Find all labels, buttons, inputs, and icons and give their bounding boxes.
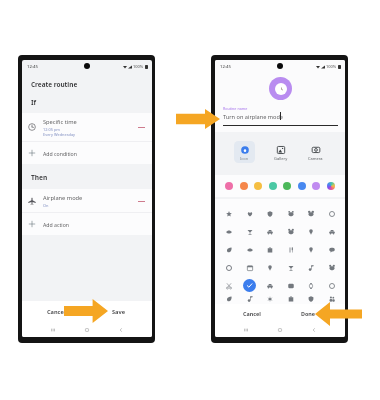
button[interactable]	[270, 141, 291, 163]
staticText: 100%	[133, 64, 144, 69]
staticText: Turn on airplane mode	[223, 113, 283, 121]
button[interactable]: Icon 21	[263, 261, 276, 274]
button[interactable]: Colour	[298, 182, 306, 190]
button[interactable]: Icon 29	[304, 279, 317, 292]
staticText: Every Wednesday	[43, 132, 76, 137]
button[interactable]: Icon 11	[304, 225, 317, 238]
button[interactable]: Icon 3	[263, 207, 276, 220]
button[interactable]	[234, 141, 255, 163]
staticText: 100%	[326, 64, 337, 69]
button[interactable]: Add condition	[22, 142, 152, 164]
button[interactable]: Icon 36	[325, 294, 338, 304]
button[interactable]: Icon 24	[325, 261, 338, 274]
button[interactable]: Icon 10	[284, 225, 297, 238]
staticText: 12:45	[220, 63, 231, 69]
button[interactable]: Icon 23	[304, 261, 317, 274]
staticText: 12:45	[27, 63, 38, 69]
button[interactable]: Colour	[254, 182, 262, 190]
button[interactable]: Remove condition	[137, 123, 146, 132]
staticText: If	[31, 98, 37, 107]
staticText: Save	[112, 308, 125, 316]
staticText: Airplane mode	[43, 194, 83, 202]
button[interactable]: Selected icon	[243, 279, 256, 292]
button[interactable]: Colour	[269, 182, 277, 190]
staticText: 12:05 pm	[43, 127, 60, 132]
button[interactable]: Icon 20	[243, 261, 256, 274]
staticText: Gallery	[274, 156, 288, 161]
button[interactable]	[305, 141, 326, 163]
button[interactable]: Icon 34	[284, 294, 297, 304]
button[interactable]: Icon 15	[263, 243, 276, 256]
button[interactable]: Icon 28	[284, 279, 297, 292]
button[interactable]: Recents	[243, 327, 249, 333]
button[interactable]: Back	[311, 327, 317, 333]
button[interactable]: Colour	[225, 182, 233, 190]
button[interactable]: Colour	[240, 182, 248, 190]
button[interactable]: Home	[277, 327, 283, 333]
button[interactable]: Icon 18	[325, 243, 338, 256]
staticText: Then	[31, 173, 48, 182]
button[interactable]: Icon 22	[284, 261, 297, 274]
button[interactable]: Icon 35	[304, 294, 317, 304]
button[interactable]: Icon 31	[222, 294, 235, 304]
button[interactable]: More colours	[327, 182, 335, 190]
button[interactable]: Icon 17	[304, 243, 317, 256]
button[interactable]: Icon 19	[222, 261, 235, 274]
button[interactable]: Remove action	[137, 197, 146, 206]
staticText: Done	[301, 310, 316, 317]
button[interactable]: Icon 5	[304, 207, 317, 220]
button[interactable]: Airplane mode	[22, 189, 152, 213]
button[interactable]: Back	[118, 327, 124, 333]
button[interactable]: Icon 9	[263, 225, 276, 238]
button[interactable]: Cancel	[40, 301, 72, 322]
button[interactable]: Save	[102, 301, 134, 322]
button[interactable]: Icon 4	[284, 207, 297, 220]
button[interactable]: Icon 13	[222, 243, 235, 256]
staticText: Icon	[240, 156, 249, 161]
button[interactable]: Icon 8	[243, 225, 256, 238]
button[interactable]: Icon 27	[263, 279, 276, 292]
staticText: Add condition	[43, 150, 77, 157]
staticText: Camera	[308, 156, 323, 161]
button[interactable]: Icon 30	[325, 279, 338, 292]
button[interactable]: Colour	[283, 182, 291, 190]
button[interactable]: Icon 7	[222, 225, 235, 238]
button[interactable]: Icon 6	[325, 207, 338, 220]
button[interactable]: Icon 32	[243, 294, 256, 304]
button[interactable]: Icon 33	[263, 294, 276, 304]
button[interactable]: Routine icon	[269, 77, 292, 100]
staticText: Cancel	[243, 310, 261, 317]
staticText: Add action	[43, 221, 69, 228]
button[interactable]: Recents	[50, 327, 56, 333]
button[interactable]: Icon 14	[243, 243, 256, 256]
staticText: Routine name	[223, 106, 248, 111]
button[interactable]: Colour	[312, 182, 320, 190]
button[interactable]: Home	[84, 327, 90, 333]
button[interactable]: Cancel	[236, 304, 268, 322]
button[interactable]: Icon 12	[325, 225, 338, 238]
button[interactable]: Add action	[22, 213, 152, 235]
button[interactable]: Icon 25	[222, 279, 235, 292]
button[interactable]: Specific time	[22, 113, 152, 141]
button[interactable]: Icon 2	[243, 207, 256, 220]
button[interactable]: Done	[292, 304, 324, 322]
staticText: On	[43, 203, 49, 208]
staticText: Create routine	[31, 80, 78, 89]
staticText: Specific time	[43, 118, 77, 126]
button[interactable]: Icon 1	[222, 207, 235, 220]
button[interactable]: Icon 16	[284, 243, 297, 256]
staticText: Cancel	[47, 308, 66, 316]
